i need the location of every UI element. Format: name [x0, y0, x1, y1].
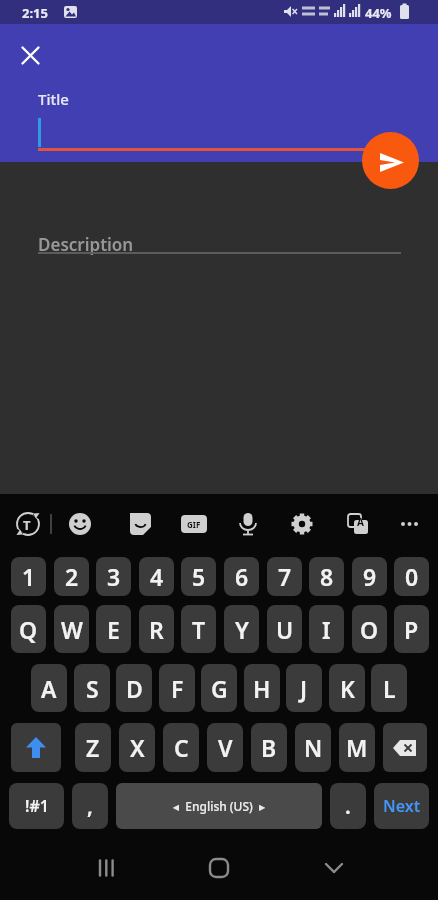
staticText: T [192, 614, 206, 645]
staticText: S [86, 673, 99, 704]
button[interactable]: 1 [11, 557, 46, 596]
staticText: C [174, 732, 189, 763]
staticText: D [126, 673, 143, 704]
staticText: A [357, 515, 364, 529]
button[interactable]: 4 [139, 557, 174, 596]
button[interactable]: 8 [309, 557, 344, 596]
staticText: B [261, 732, 277, 763]
button[interactable]: 0 [394, 557, 429, 596]
staticText: T [23, 516, 31, 534]
staticText: Next [383, 795, 421, 817]
button[interactable]: B [251, 723, 287, 772]
staticText: I [322, 614, 331, 645]
staticText: , [87, 792, 93, 821]
staticText: 5 [192, 561, 206, 592]
staticText: 4 [150, 561, 164, 592]
staticText: O [360, 614, 379, 645]
button[interactable]: 5 [181, 557, 216, 596]
button[interactable]: G [201, 664, 237, 712]
staticText: P [404, 614, 419, 645]
button[interactable]: N [295, 723, 331, 772]
button[interactable]: Y [224, 605, 259, 653]
staticText: 6 [235, 561, 249, 592]
button[interactable]: O [352, 605, 387, 653]
button[interactable] [362, 132, 419, 189]
button[interactable] [85, 850, 129, 894]
button[interactable]: H [244, 664, 280, 712]
button[interactable]: Next [374, 783, 429, 829]
staticText: K [340, 673, 355, 704]
staticText: . [345, 792, 351, 821]
staticText: Y [235, 614, 249, 645]
button[interactable]: J [286, 664, 322, 712]
staticText: Z [86, 732, 100, 763]
staticText: G [211, 673, 228, 704]
staticText: R [149, 614, 164, 645]
button[interactable]: T [181, 605, 216, 653]
button[interactable]: 7 [267, 557, 302, 596]
button[interactable]: R [139, 605, 174, 653]
staticText: 44% [365, 4, 392, 22]
button[interactable] [14, 39, 46, 71]
staticText: 7 [278, 561, 292, 592]
staticText: 3 [107, 561, 121, 592]
button[interactable]: F [159, 664, 195, 712]
staticText: A [41, 673, 57, 704]
button[interactable]: ◂ English (US) ▸ [116, 783, 322, 829]
staticText: 2:15 [22, 4, 48, 22]
staticText: GIF [187, 519, 201, 530]
button[interactable]: !#1 [9, 783, 64, 829]
staticText: H [253, 673, 271, 704]
staticText: U [276, 614, 294, 645]
button[interactable] [197, 850, 241, 894]
button[interactable]: X [119, 723, 155, 772]
button[interactable]: K [329, 664, 365, 712]
staticText: F [171, 673, 184, 704]
button[interactable]: W [54, 605, 89, 653]
button[interactable]: S [74, 664, 110, 712]
staticText: Description [38, 233, 134, 256]
button[interactable]: , [72, 783, 108, 829]
staticText: X [130, 732, 145, 763]
staticText: !#1 [25, 795, 49, 817]
staticText: W [61, 614, 83, 645]
staticText: E [107, 614, 120, 645]
staticText: J [300, 673, 308, 704]
button[interactable]: V [207, 723, 243, 772]
staticText: M [346, 732, 368, 763]
button[interactable]: U [267, 605, 302, 653]
button[interactable]: Q [11, 605, 46, 653]
button[interactable]: . [330, 783, 366, 829]
staticText: 8 [320, 561, 334, 592]
button[interactable] [312, 850, 356, 894]
button[interactable]: D [116, 664, 152, 712]
staticText: 1 [22, 561, 36, 592]
button[interactable]: P [394, 605, 429, 653]
button[interactable]: E [96, 605, 131, 653]
staticText: 9 [363, 561, 377, 592]
button[interactable]: M [339, 723, 375, 772]
button[interactable]: I [309, 605, 344, 653]
button[interactable]: 2 [54, 557, 89, 596]
button[interactable]: 9 [352, 557, 387, 596]
button[interactable]: L [371, 664, 407, 712]
button[interactable] [11, 723, 61, 772]
staticText: L [383, 673, 396, 704]
button[interactable]: GIF [181, 515, 207, 533]
button[interactable]: Z [75, 723, 111, 772]
button[interactable] [383, 723, 427, 772]
button[interactable]: C [163, 723, 199, 772]
staticText: V [218, 732, 233, 763]
staticText: N [304, 732, 323, 763]
button[interactable]: 6 [224, 557, 259, 596]
staticText: 0 [405, 561, 419, 592]
staticText: Title [38, 89, 69, 109]
staticText: Q [19, 614, 38, 645]
staticText: ◂ English (US) ▸ [173, 798, 266, 814]
staticText: 2 [65, 561, 79, 592]
button[interactable]: A [31, 664, 67, 712]
button[interactable]: 3 [96, 557, 131, 596]
